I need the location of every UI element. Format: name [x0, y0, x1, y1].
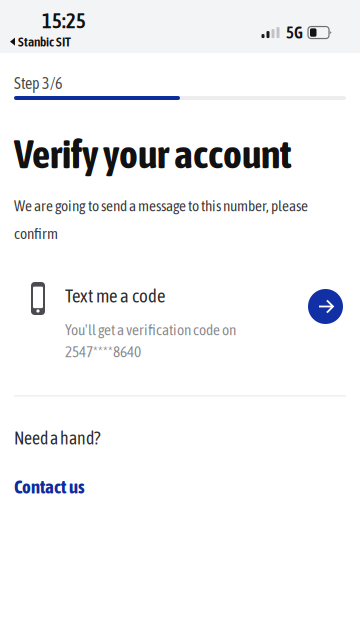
- staticText: Step 3/6: [14, 74, 63, 92]
- staticText: 2547****8640: [65, 343, 141, 361]
- button[interactable]: Text me a code: [14, 268, 346, 364]
- staticText: Need a hand?: [14, 428, 100, 448]
- staticText: Text me a code: [65, 285, 165, 306]
- staticText: We are going to send a message to this n…: [14, 197, 308, 242]
- staticText: Stanbic SIT: [18, 34, 71, 49]
- staticText: You'll get a verification code on: [65, 321, 236, 339]
- staticText: Contact us: [14, 476, 85, 497]
- staticText: 15:25: [42, 9, 86, 33]
- button[interactable]: Contact us: [14, 472, 85, 501]
- staticText: Verify your account: [14, 131, 292, 177]
- staticText: 5G: [286, 23, 303, 42]
